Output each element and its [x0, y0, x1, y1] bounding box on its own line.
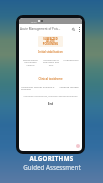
button[interactable]: Administer specific antidote if availabl… [21, 85, 56, 91]
staticText: 10:45 [30, 20, 37, 23]
button[interactable]: Search [70, 26, 76, 32]
staticText: SUSPECTED ACUTE POISONING [39, 37, 62, 46]
staticText: Guided Assessment [23, 163, 81, 171]
button[interactable]: More options [76, 26, 82, 32]
staticText: ALGORITHMS [29, 154, 74, 162]
staticText: Continue monitoring; consider decontamin… [19, 94, 82, 97]
button[interactable]: SUSPECTED ACUTE POISONING [38, 36, 63, 47]
button[interactable]: Monitoring of vital signs and GCS [42, 58, 60, 67]
button[interactable]: Antidote therapy [58, 85, 80, 88]
staticText: Initial stabilisation [19, 50, 82, 54]
staticText: End [19, 102, 82, 106]
button[interactable]: Add [76, 144, 80, 148]
staticText: Acute Management of Pois... [20, 27, 61, 31]
button[interactable]: Hypotension [62, 58, 80, 61]
staticText: Clinical toxidrome [19, 77, 82, 81]
button[interactable]: Resuscitation and airway control [21, 58, 40, 67]
